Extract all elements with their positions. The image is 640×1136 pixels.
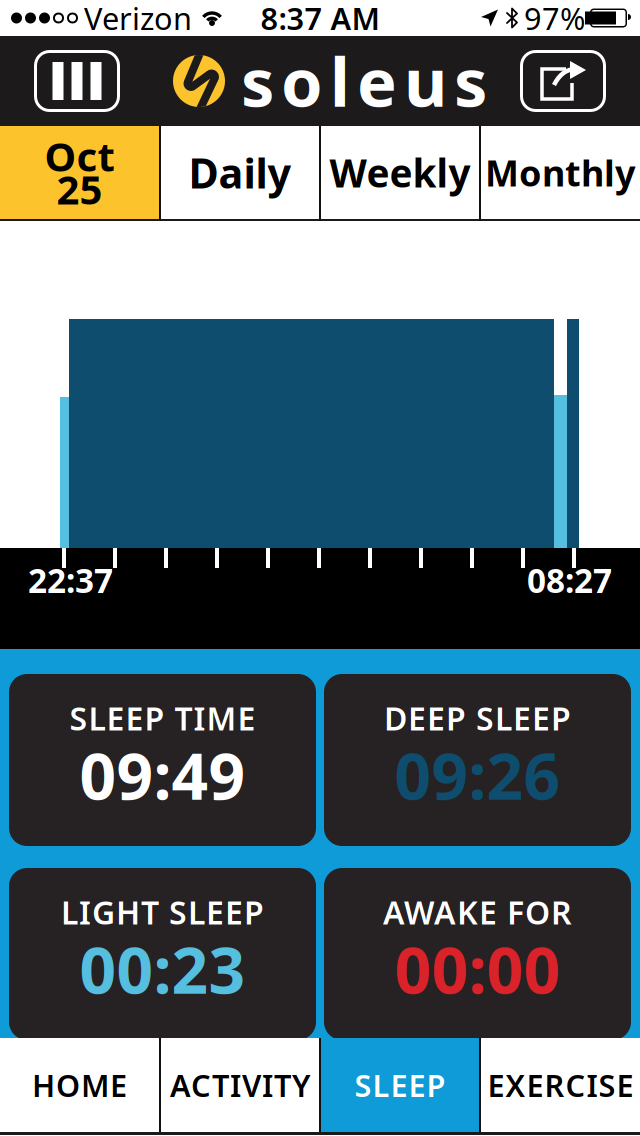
staticText: 8:37 AM: [260, 0, 379, 38]
staticText: 25: [56, 162, 102, 215]
staticText: Monthly: [485, 149, 636, 196]
staticText: 08:27: [527, 558, 612, 602]
staticText: 09:49: [79, 732, 245, 817]
staticText: 00:23: [79, 926, 245, 1011]
button[interactable]: Menu: [34, 50, 120, 112]
button[interactable]: ACTIVITY: [161, 1038, 319, 1132]
staticText: 97%: [524, 0, 585, 38]
staticText: LIGHT SLEEP: [61, 891, 264, 933]
staticText: SLEEP: [354, 1065, 445, 1105]
staticText: Oct: [44, 129, 114, 182]
button[interactable]: Weekly: [321, 126, 479, 219]
button[interactable]: Share: [520, 50, 606, 112]
staticText: HOME: [32, 1065, 127, 1105]
staticText: AWAKE FOR: [383, 891, 572, 933]
staticText: DEEP SLEEP: [384, 697, 571, 739]
button[interactable]: Monthly: [481, 126, 640, 219]
staticText: 09:26: [394, 732, 560, 817]
button[interactable]: HOME: [0, 1038, 159, 1132]
staticText: SLEEP TIME: [69, 697, 255, 739]
button[interactable]: EXERCISE: [481, 1038, 640, 1132]
button[interactable]: Oct: [0, 126, 159, 219]
staticText: EXERCISE: [487, 1065, 633, 1105]
staticText: ACTIVITY: [170, 1065, 310, 1105]
staticText: 22:37: [28, 558, 113, 602]
staticText: Daily: [188, 145, 291, 200]
button[interactable]: Daily: [161, 126, 319, 219]
staticText: 00:00: [394, 926, 560, 1011]
staticText: Verizon: [84, 0, 192, 38]
staticText: Weekly: [329, 147, 470, 198]
button[interactable]: SLEEP: [321, 1038, 479, 1132]
staticText: soleus: [241, 37, 487, 125]
